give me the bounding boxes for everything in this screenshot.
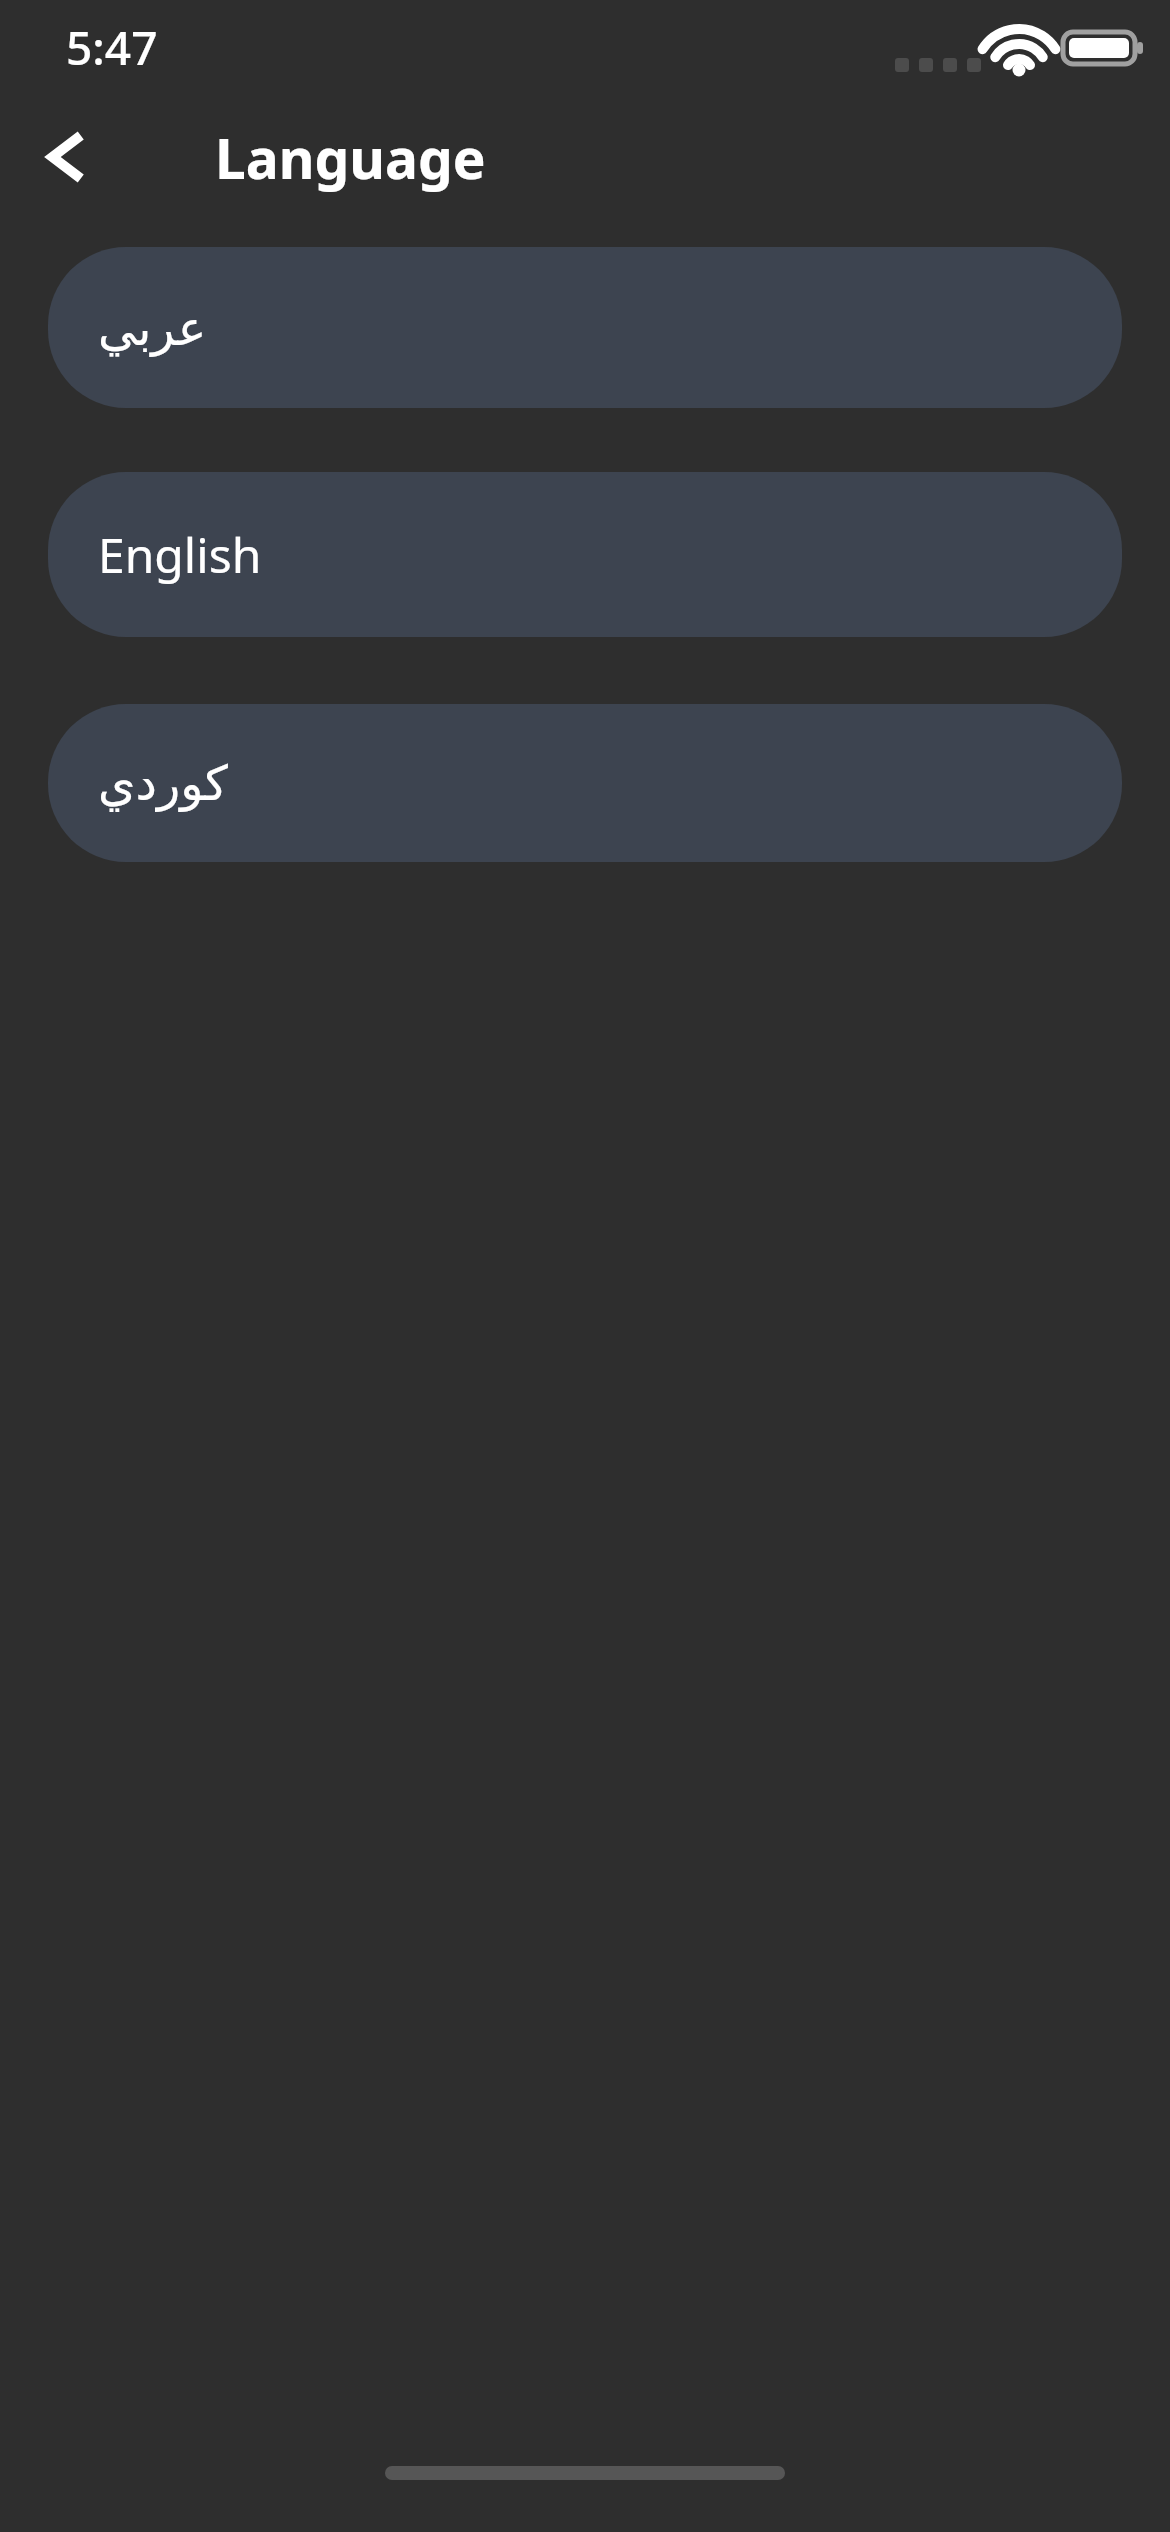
staticText: عربي xyxy=(98,300,207,356)
button[interactable]: English xyxy=(48,472,1122,637)
staticText: 5:47 xyxy=(66,16,158,79)
staticText: Language xyxy=(215,120,486,195)
staticText: كوردي xyxy=(98,755,228,811)
button[interactable]: كوردي xyxy=(48,704,1122,862)
button[interactable]: Back xyxy=(24,116,106,198)
staticText: English xyxy=(98,522,262,587)
button[interactable]: عربي xyxy=(48,247,1122,408)
